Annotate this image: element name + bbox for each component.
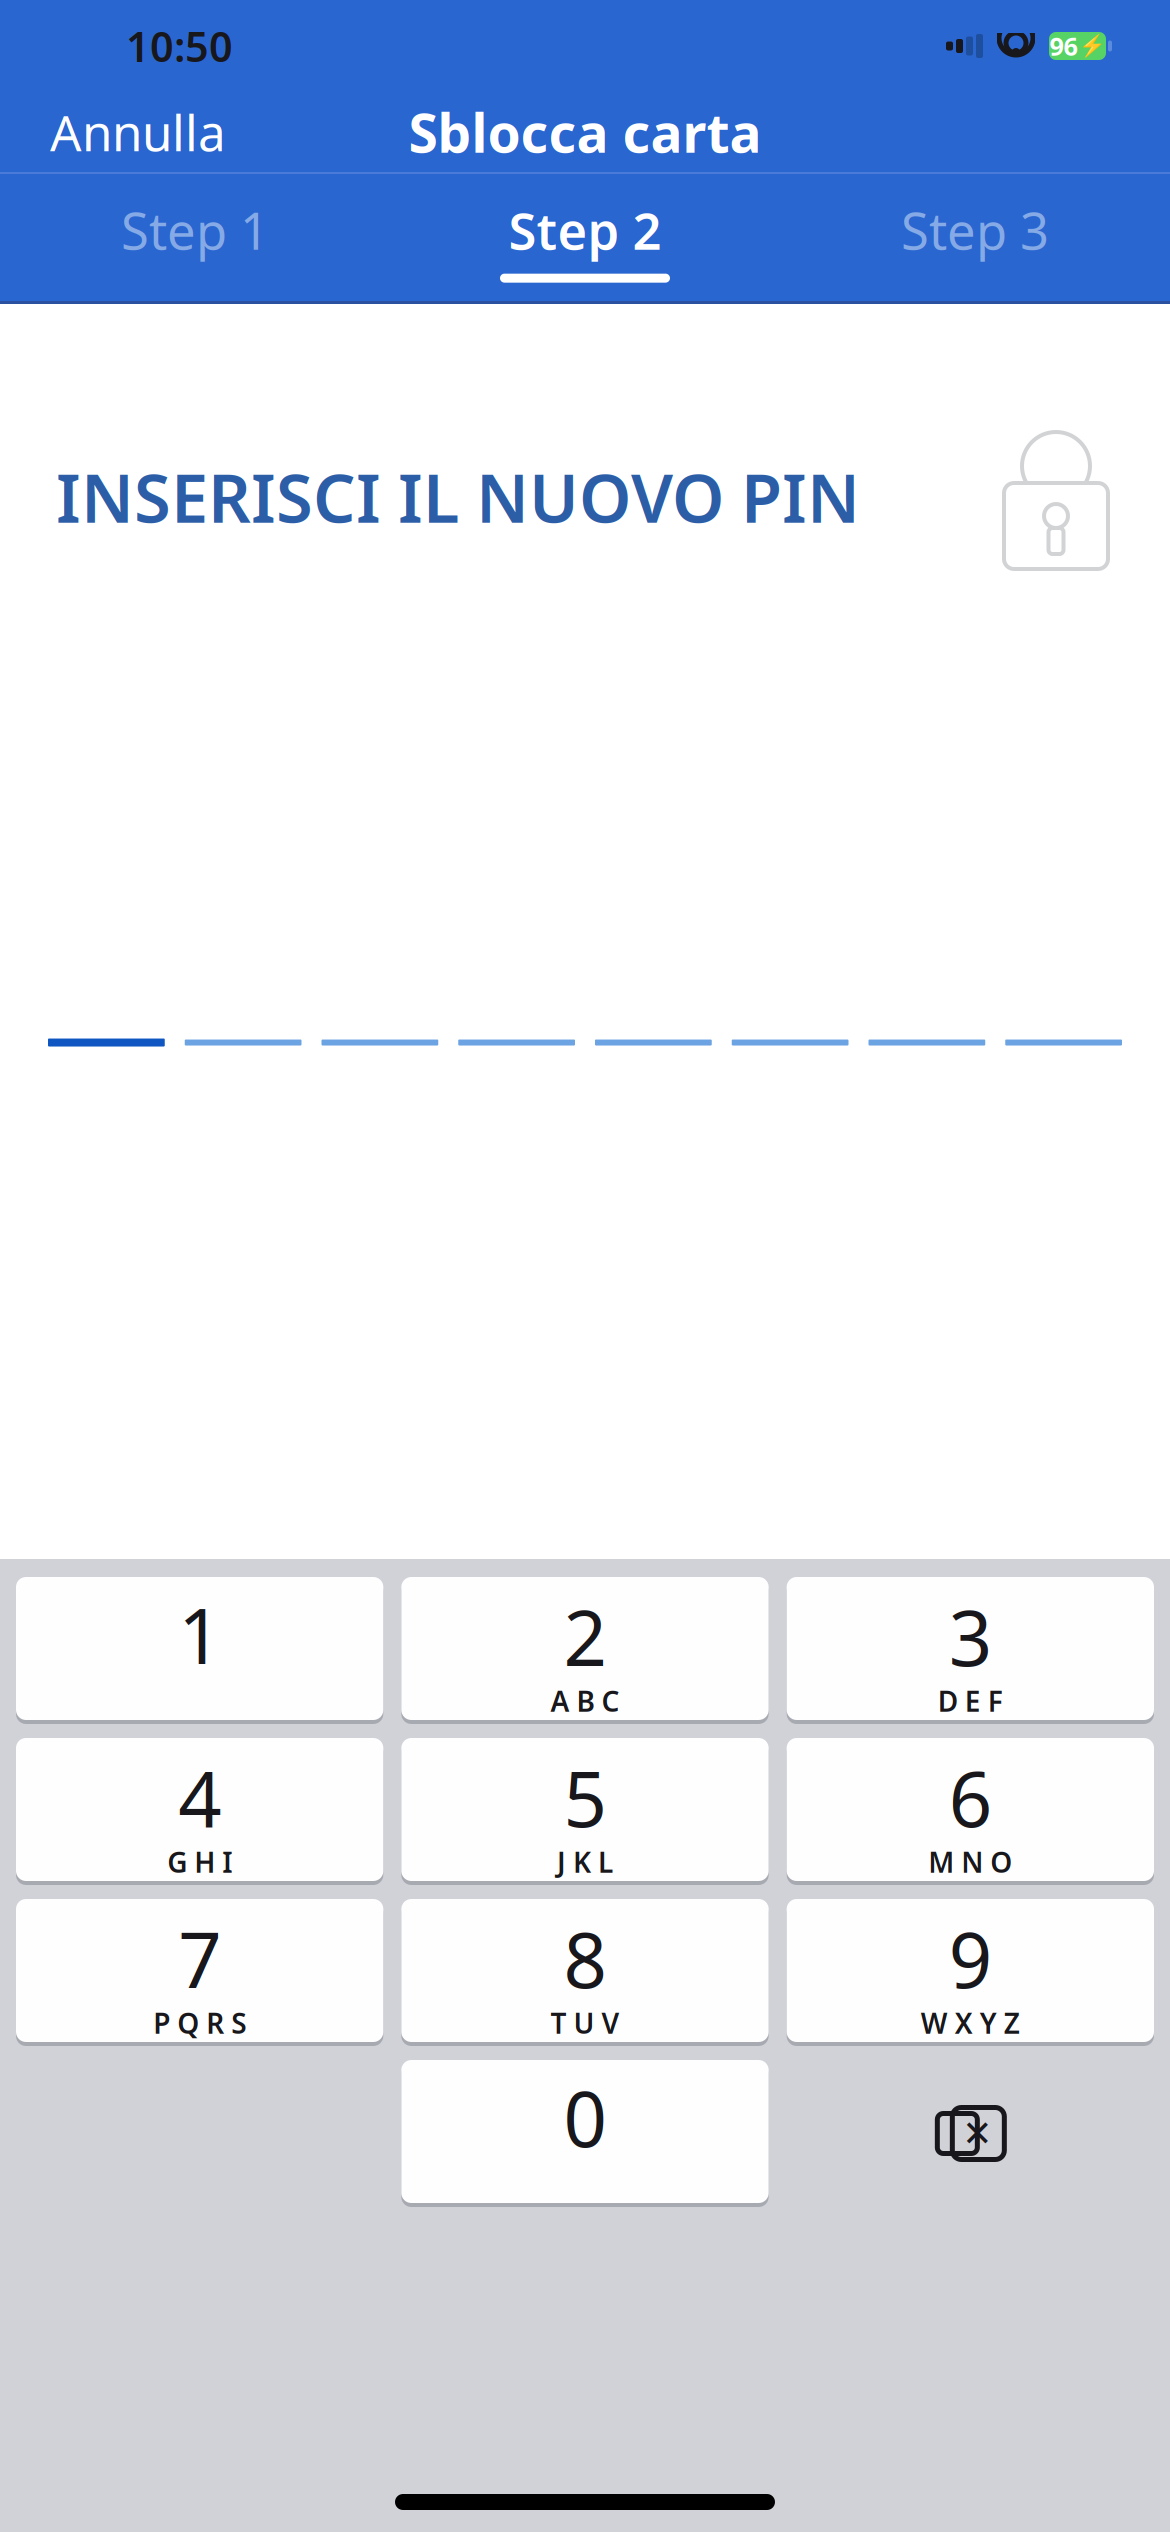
staticText: T U V bbox=[550, 2004, 619, 2042]
staticText: P Q R S bbox=[153, 2004, 246, 2042]
staticText: 9 bbox=[949, 1908, 992, 2009]
button[interactable]: 0 bbox=[401, 2060, 769, 2207]
staticText: D E F bbox=[938, 1682, 1003, 1720]
button[interactable]: Step 2 bbox=[390, 178, 780, 297]
button[interactable]: 2 bbox=[401, 1577, 769, 1724]
staticText: Annulla bbox=[50, 99, 226, 165]
button[interactable]: Step 3 bbox=[780, 178, 1170, 297]
staticText: 0 bbox=[563, 2067, 606, 2168]
staticText: 6 bbox=[949, 1747, 992, 1848]
staticText: Step 1 bbox=[121, 196, 269, 264]
staticText: J K L bbox=[557, 1843, 613, 1881]
staticText: M N O bbox=[928, 1843, 1012, 1881]
staticText: INSERISCI IL NUOVO PIN bbox=[56, 453, 860, 541]
staticText: W X Y Z bbox=[921, 2004, 1020, 2042]
button[interactable]: 1 bbox=[16, 1577, 383, 1724]
staticText: 5 bbox=[563, 1747, 606, 1848]
button[interactable]: 8 bbox=[401, 1899, 769, 2046]
staticText: 2 bbox=[563, 1586, 606, 1687]
staticText: 96 bbox=[1049, 29, 1077, 63]
button[interactable]: 4 bbox=[16, 1738, 383, 1885]
staticText: Step 3 bbox=[901, 196, 1049, 264]
staticText: 8 bbox=[563, 1908, 606, 2009]
button[interactable]: Delete bbox=[787, 2060, 1154, 2207]
button[interactable]: Step 1 bbox=[0, 178, 390, 297]
staticText: ✕ bbox=[962, 2113, 992, 2154]
button[interactable]: 5 bbox=[401, 1738, 769, 1885]
staticText: ⚡ bbox=[1078, 34, 1105, 58]
staticText: 7 bbox=[178, 1908, 221, 2009]
staticText: 1 bbox=[178, 1584, 221, 1685]
button[interactable]: Annulla bbox=[34, 87, 242, 177]
button[interactable]: 3 bbox=[787, 1577, 1154, 1724]
staticText: A B C bbox=[550, 1682, 619, 1720]
staticText: Sblocca carta bbox=[408, 97, 761, 167]
button[interactable]: 7 bbox=[16, 1899, 383, 2046]
staticText: Step 2 bbox=[508, 196, 661, 264]
button[interactable]: 6 bbox=[787, 1738, 1154, 1885]
staticText: 10:50 bbox=[126, 19, 233, 73]
staticText: 3 bbox=[949, 1586, 992, 1687]
staticText: 4 bbox=[178, 1747, 221, 1848]
button[interactable]: 9 bbox=[787, 1899, 1154, 2046]
staticText: G H I bbox=[167, 1843, 232, 1881]
